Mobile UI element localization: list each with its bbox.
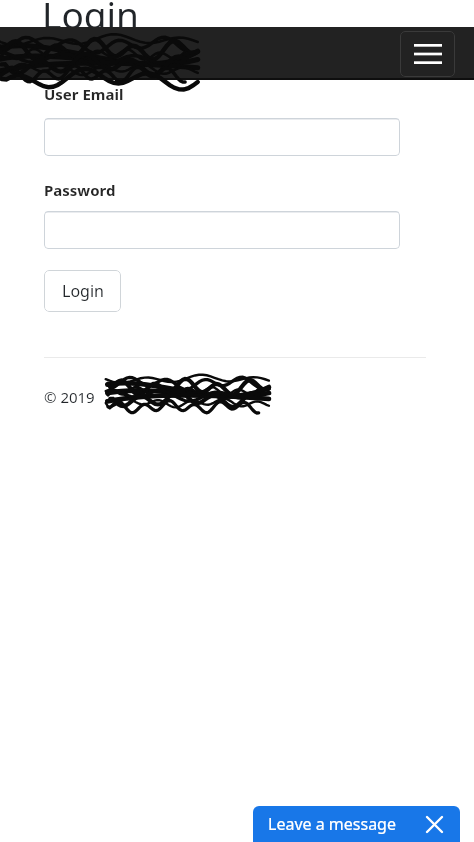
staticText: Login <box>42 0 139 39</box>
staticText: Password <box>44 180 116 200</box>
button[interactable] <box>44 118 400 156</box>
button[interactable]: Open navigation menu <box>400 31 455 77</box>
button[interactable]: Close chat <box>424 814 444 834</box>
staticText: Login <box>62 280 104 302</box>
staticText: User Email <box>44 84 124 104</box>
staticText: © 2019 <box>44 387 95 407</box>
button[interactable]: Login <box>44 270 121 312</box>
button[interactable] <box>44 211 400 249</box>
staticText: Leave a message <box>268 813 396 835</box>
button[interactable]: Leave a message <box>253 806 460 842</box>
